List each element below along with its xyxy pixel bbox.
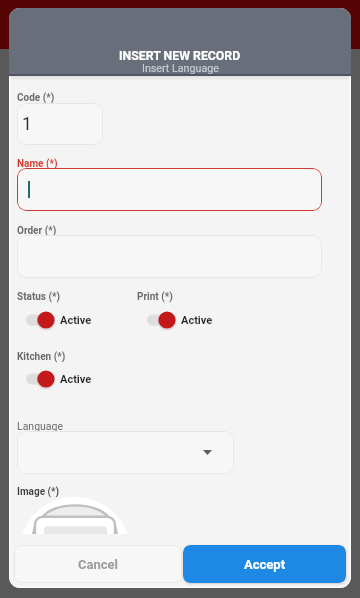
button[interactable]: Active [147,310,215,330]
staticText: Image (*) [17,486,60,498]
staticText: Accept [244,557,286,572]
staticText: Active [60,314,92,327]
staticText: Language [17,420,64,432]
staticText: Code (*) [17,92,55,104]
button[interactable]: Add image [19,497,131,534]
staticText: Active [60,373,92,386]
staticText: Name (*) [17,158,58,170]
button[interactable]: 1 [17,103,103,145]
button[interactable] [17,431,234,474]
staticText: INSERT NEW RECORD [119,49,241,63]
staticText: Insert Language [142,62,219,75]
staticText: Order (*) [17,225,57,237]
button[interactable] [17,235,322,278]
staticText: Print (*) [137,291,173,303]
button[interactable]: Cancel [14,545,182,583]
staticText: 1 [22,114,32,135]
button[interactable]: Accept [183,545,346,583]
staticText: Cancel [78,557,119,572]
button[interactable]: Active [26,310,94,330]
staticText: Status (*) [17,291,61,303]
button[interactable]: Active [26,369,94,389]
button[interactable] [17,168,322,211]
staticText: Kitchen (*) [17,351,66,363]
staticText: Active [181,314,213,327]
